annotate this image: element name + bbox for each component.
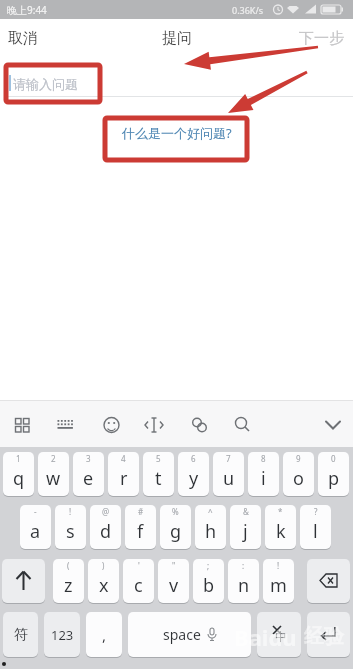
button[interactable]: 8 [248, 452, 279, 496]
staticText: 9 [296, 453, 301, 464]
button[interactable]: : [228, 559, 259, 603]
button[interactable]: @ [90, 505, 121, 549]
staticText: j [243, 519, 248, 544]
button[interactable]: & [230, 505, 261, 549]
button[interactable]: ^ [195, 505, 226, 549]
button[interactable]: 123 [44, 612, 80, 657]
staticText: g [170, 519, 182, 544]
staticText: 0.36K/s [232, 4, 264, 16]
button[interactable] [307, 612, 350, 657]
staticText: ( [67, 560, 70, 571]
staticText: f [137, 519, 144, 544]
button[interactable]: ! [55, 505, 86, 549]
button[interactable]: " [158, 559, 189, 603]
button[interactable]: ? [300, 505, 331, 549]
staticText: b [203, 573, 215, 598]
staticText: 什么是一个好问题? [122, 124, 232, 142]
staticText: o [293, 466, 304, 491]
staticText: 8 [261, 453, 266, 464]
staticText: w [46, 466, 61, 491]
button[interactable]: 1 [3, 452, 34, 496]
staticText: 晚上9:44 [7, 3, 47, 17]
staticText: * [278, 506, 283, 517]
staticText: ! [69, 506, 72, 517]
staticText: v [169, 573, 179, 598]
staticText: k [276, 519, 286, 544]
staticText: ' [138, 560, 140, 571]
button[interactable]: ' [123, 559, 154, 603]
button[interactable] [2, 559, 45, 603]
staticText: 2 [51, 453, 56, 464]
button[interactable]: * [265, 505, 296, 549]
staticText: l [313, 519, 318, 544]
button[interactable]: % [160, 505, 191, 549]
button[interactable]: ; [193, 559, 224, 603]
staticText: ? [314, 506, 318, 517]
button[interactable]: 3 [73, 452, 104, 496]
staticText: t [155, 466, 162, 491]
staticText: - [34, 506, 37, 517]
staticText: 1 [16, 453, 21, 464]
button[interactable]: space [128, 612, 251, 657]
staticText: 123 [51, 626, 74, 644]
staticText: q [13, 466, 25, 491]
staticText: c [134, 573, 143, 598]
button[interactable]: 4 [108, 452, 139, 496]
staticText: 3 [86, 453, 91, 464]
staticText: 符 [14, 626, 28, 644]
button[interactable]: 9 [283, 452, 314, 496]
staticText: 请输入问题 [13, 76, 78, 92]
button[interactable]: 7 [213, 452, 244, 496]
button[interactable]: , [86, 612, 122, 657]
staticText: p [328, 466, 340, 491]
staticText: m [270, 573, 287, 598]
staticText: n [238, 573, 250, 598]
staticText: 5 [156, 453, 161, 464]
button[interactable]: 6 [178, 452, 209, 496]
button[interactable]: 符 [3, 612, 38, 657]
staticText: 经验 [304, 624, 344, 649]
staticText: ) [102, 560, 105, 571]
button[interactable]: ) [88, 559, 119, 603]
staticText: ! [277, 560, 280, 571]
staticText: , [102, 625, 107, 645]
staticText: i [261, 466, 266, 491]
staticText: r [120, 466, 128, 491]
button[interactable] [307, 559, 350, 603]
staticText: 0 [331, 453, 336, 464]
button[interactable]: 0 [318, 452, 349, 496]
button[interactable]: - [20, 505, 51, 549]
staticText: y [189, 466, 199, 491]
staticText: 6 [191, 453, 196, 464]
button[interactable]: 2 [38, 452, 69, 496]
staticText: a [30, 519, 41, 544]
staticText: h [205, 519, 217, 544]
button[interactable]: ( [53, 559, 84, 603]
button[interactable]: ! [263, 559, 294, 603]
staticText: # [138, 506, 144, 517]
staticText: 下一步 [299, 29, 344, 48]
button[interactable]: 取消 [8, 29, 38, 48]
staticText: space [163, 625, 201, 644]
staticText: : [242, 560, 245, 571]
staticText: u [223, 466, 235, 491]
staticText: 取消 [8, 29, 38, 48]
staticText: z [64, 573, 73, 598]
button[interactable]: 中 [257, 612, 301, 657]
staticText: " [172, 560, 176, 571]
staticText: 7 [226, 453, 231, 464]
button[interactable]: # [125, 505, 156, 549]
staticText: 提问 [162, 29, 192, 48]
staticText: s [66, 519, 75, 544]
button[interactable]: 下一步 [299, 29, 344, 48]
staticText: d [100, 519, 112, 544]
staticText: ^ [208, 506, 213, 517]
staticText: Baidu [234, 622, 297, 652]
staticText: x [99, 573, 109, 598]
staticText: ; [207, 560, 210, 571]
button[interactable]: 5 [143, 452, 174, 496]
staticText: & [243, 506, 249, 517]
button[interactable]: 什么是一个好问题? [0, 124, 353, 142]
staticText: e [83, 466, 94, 491]
staticText: 中 [275, 629, 287, 644]
